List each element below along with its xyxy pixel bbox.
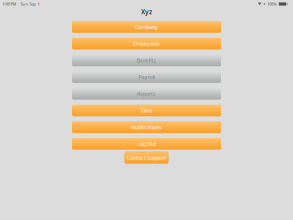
button[interactable]: Reports xyxy=(72,88,221,100)
staticText: 1:09 PM xyxy=(2,1,16,7)
staticText: Time xyxy=(140,107,152,114)
staticText: Sun Sep 1 xyxy=(20,1,39,7)
staticText: Xyz xyxy=(141,7,152,16)
staticText: Benefits xyxy=(136,57,156,64)
button[interactable]: Notifications xyxy=(72,121,221,133)
button[interactable]: Benefits xyxy=(72,55,221,66)
button[interactable]: Time xyxy=(72,105,221,116)
staticText: Contact Support xyxy=(127,154,166,161)
staticText: 100% xyxy=(267,1,277,7)
staticText: Employees xyxy=(133,40,160,47)
staticText: Reports xyxy=(137,90,156,97)
button[interactable]: Payroll xyxy=(72,71,221,83)
staticText: Payroll xyxy=(138,74,154,81)
staticText: Log Out xyxy=(137,140,156,147)
staticText: Notifications xyxy=(131,124,162,131)
button[interactable]: Log Out xyxy=(72,138,221,150)
button[interactable]: Company xyxy=(72,21,221,33)
staticText: Company xyxy=(135,23,158,31)
button[interactable]: Employees xyxy=(72,38,221,49)
button[interactable]: Contact Support xyxy=(125,152,168,163)
